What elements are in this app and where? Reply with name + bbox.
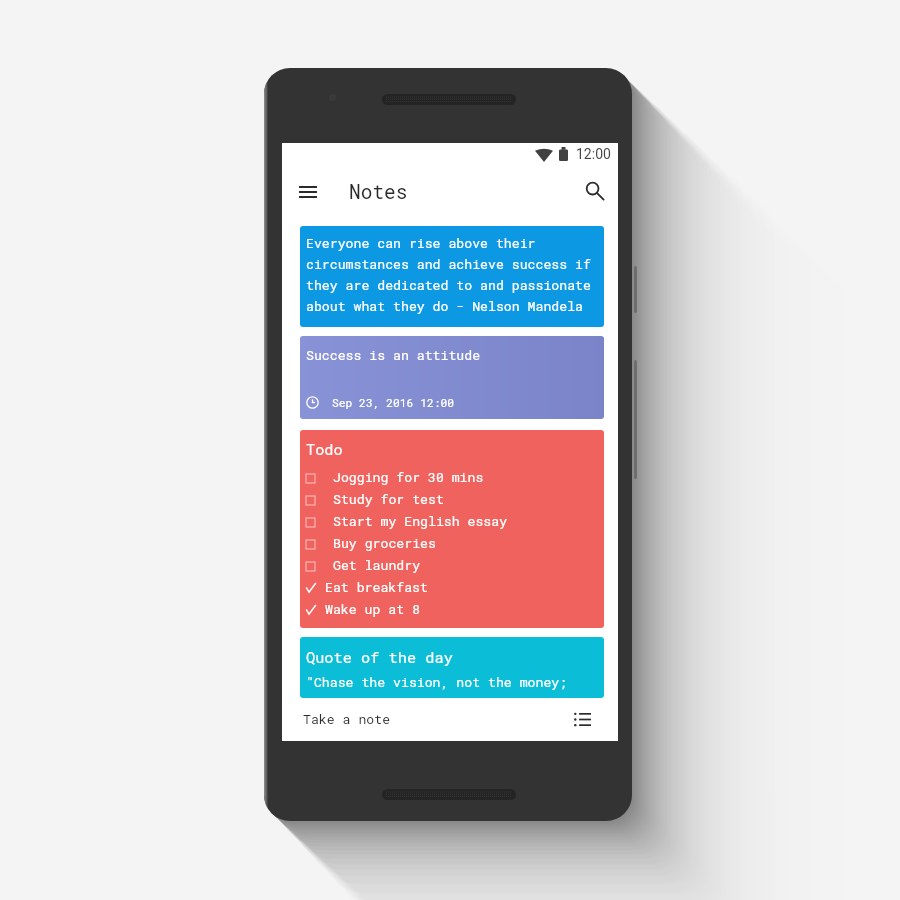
staticText: Sep 23, 2016 12:00 [332, 395, 455, 410]
button[interactable]: Start my English essay [300, 509, 604, 531]
staticText: they are dedicated to and passionate [306, 273, 591, 294]
staticText: Quote of the day [306, 647, 453, 667]
staticText: Get laundry [333, 556, 421, 573]
button[interactable]: Toggle list layout [564, 701, 600, 737]
staticText: Notes [349, 179, 408, 205]
staticText: "Chase the vision, not the money; [306, 673, 568, 690]
staticText: Eat breakfast [325, 578, 428, 595]
button[interactable]: Buy groceries [300, 531, 604, 553]
staticText: Wake up at 8 [325, 600, 420, 617]
staticText: Jogging for 30 mins [333, 468, 484, 485]
staticText: Todo [306, 439, 343, 459]
button[interactable]: Eat breakfast [300, 575, 604, 597]
button[interactable]: Study for test [300, 487, 604, 509]
staticText: Everyone can rise above their [306, 231, 536, 252]
staticText: 12:00 [576, 146, 611, 162]
button[interactable]: Wake up at 8 [300, 597, 604, 619]
button[interactable]: Open navigation menu [286, 166, 330, 217]
staticText: about what they do - Nelson Mandela [306, 294, 583, 315]
staticText: circumstances and achieve success if [306, 252, 591, 273]
button[interactable]: Jogging for 30 mins [300, 465, 604, 487]
button[interactable]: Success is an attitude [300, 336, 604, 419]
button[interactable]: Everyone can rise above their [300, 226, 604, 327]
staticText: Take a note [303, 710, 391, 727]
button[interactable]: Quote of the day [300, 637, 604, 698]
staticText: Success is an attitude [306, 346, 481, 363]
button[interactable]: Todo [300, 430, 604, 628]
button[interactable]: Get laundry [300, 553, 604, 575]
staticText: Study for test [333, 490, 444, 507]
button[interactable]: Search [570, 165, 618, 216]
staticText: Start my English essay [333, 512, 508, 529]
staticText: Buy groceries [333, 534, 436, 551]
